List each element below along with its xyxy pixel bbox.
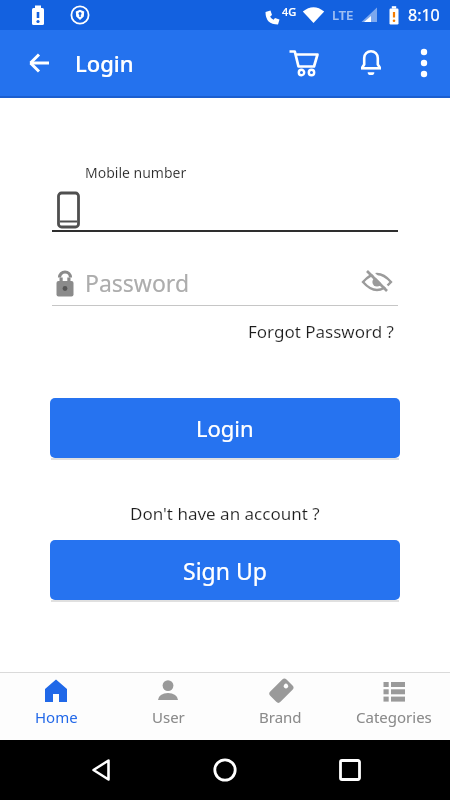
staticText: LTE [332, 6, 354, 24]
button[interactable] [358, 48, 384, 78]
button[interactable] [213, 758, 237, 782]
button[interactable]: Forgot Password ? [248, 320, 394, 343]
staticText: 4G [282, 4, 297, 19]
button[interactable] [26, 50, 52, 76]
button[interactable] [52, 190, 398, 230]
button[interactable] [420, 48, 428, 78]
button[interactable]: Sign Up [50, 540, 400, 600]
button[interactable]: User [112, 673, 224, 740]
staticText: Home [35, 707, 78, 727]
staticText: Don't have an account ? [130, 502, 320, 525]
staticText: Login [75, 48, 134, 78]
button[interactable] [90, 758, 114, 782]
button[interactable]: Home [0, 673, 112, 740]
staticText: Sign Up [183, 555, 267, 586]
button[interactable]: Login [50, 398, 400, 458]
button[interactable] [339, 759, 361, 781]
button[interactable] [288, 47, 324, 79]
staticText: Categories [356, 707, 432, 727]
staticText: Login [196, 413, 254, 443]
button[interactable]: Password [54, 266, 394, 298]
button[interactable]: Categories [337, 673, 450, 740]
staticText: Brand [259, 707, 302, 727]
staticText: 8:10 [408, 4, 440, 26]
staticText: Password [85, 267, 190, 298]
button[interactable]: Brand [224, 673, 337, 740]
button[interactable] [360, 268, 394, 296]
staticText: Mobile number [85, 163, 187, 182]
staticText: User [152, 707, 185, 727]
